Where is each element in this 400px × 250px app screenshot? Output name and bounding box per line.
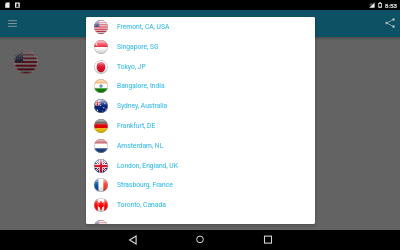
button[interactable]: Open navigation drawer — [4, 15, 21, 32]
staticText: Frankfurt, DE — [117, 122, 156, 130]
button[interactable]: Toronto, Canada — [86, 195, 315, 215]
staticText: Toronto, Canada — [117, 201, 166, 209]
staticText: Sydney, Australia — [117, 102, 168, 110]
staticText: Singapore, SG — [117, 43, 159, 51]
button[interactable]: Fremont, CA, USA — [86, 217, 315, 224]
staticText: Tokyo, JP — [117, 63, 146, 71]
button[interactable]: Strasbourg, France — [86, 175, 315, 195]
staticText: Amsterdam, NL — [117, 142, 164, 150]
button[interactable]: Selected server location — [14, 50, 38, 74]
staticText: Fremont, CA, USA — [117, 23, 170, 31]
staticText: 8:53 — [385, 2, 397, 9]
button[interactable]: Fremont, CA, USA — [86, 17, 315, 37]
button[interactable]: Recent apps — [258, 230, 278, 250]
button[interactable]: London, England, UK — [86, 156, 315, 175]
staticText: Strasbourg, France — [117, 181, 173, 189]
button[interactable]: Singapore, SG — [86, 37, 315, 57]
button[interactable]: Amsterdam, NL — [86, 136, 315, 156]
button[interactable]: Home — [190, 230, 210, 250]
staticText: Bangalore, India — [117, 82, 165, 90]
button[interactable]: Share — [381, 14, 399, 32]
button[interactable]: Back — [123, 230, 143, 250]
button[interactable]: Tokyo, JP — [86, 57, 315, 76]
button[interactable]: Sydney, Australia — [86, 96, 315, 116]
button[interactable]: Frankfurt, DE — [86, 116, 315, 136]
button[interactable]: Bangalore, India — [86, 76, 315, 96]
staticText: London, England, UK — [117, 162, 178, 170]
